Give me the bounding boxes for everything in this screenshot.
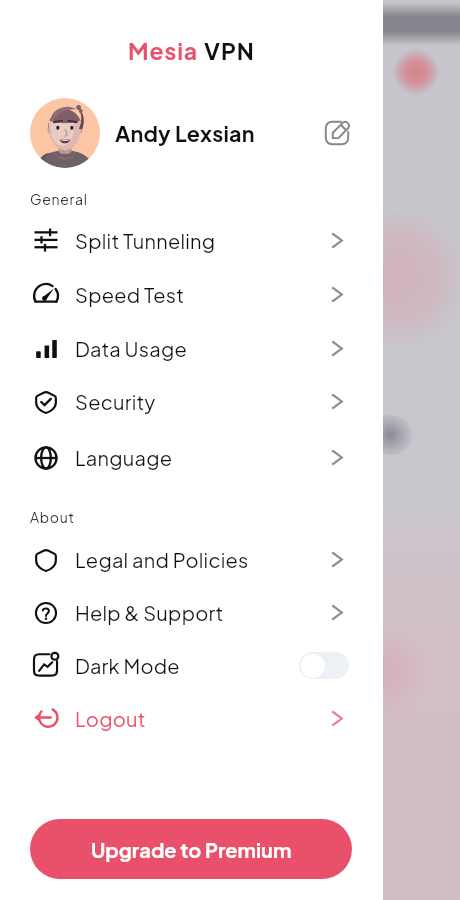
staticText: Data Usage [75,336,187,361]
staticText: Speed Test [75,282,185,307]
staticText: Andy Lexsian [115,120,255,147]
button[interactable]: Speed Test [0,268,383,321]
button[interactable]: Legal and Policies [0,533,383,586]
button[interactable]: Help & Support [0,586,383,639]
button[interactable]: Dark Mode toggle [299,652,349,679]
staticText: Help & Support [75,600,224,625]
button[interactable]: Logout [0,692,383,745]
staticText: Dark Mode [75,653,180,678]
staticText: Language [75,445,173,470]
staticText: VPN [199,36,255,65]
button[interactable]: Edit profile [321,117,353,149]
button[interactable]: Security [0,375,383,428]
staticText: Mesia [128,36,199,65]
staticText: Split Tunneling [75,228,216,253]
button[interactable]: Dark Mode [0,639,383,692]
staticText: About [30,508,75,526]
button[interactable]: Data Usage [0,322,383,375]
staticText: Legal and Policies [75,547,249,572]
staticText: Security [75,389,156,414]
staticText: Upgrade to Premium [91,837,292,862]
button[interactable]: Language [0,431,383,484]
button[interactable]: Split Tunneling [0,214,383,267]
staticText: Logout [75,706,146,731]
button[interactable]: Upgrade to Premium [30,819,352,879]
staticText: General [30,190,88,208]
